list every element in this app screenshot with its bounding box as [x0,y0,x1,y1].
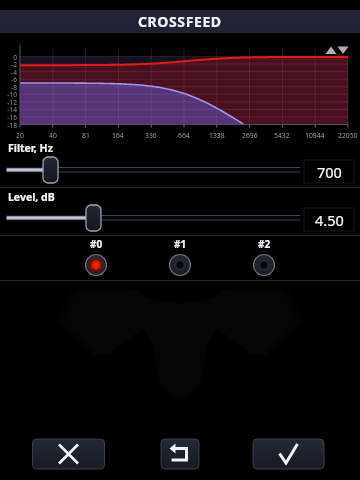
staticText: -18 [7,121,17,130]
staticText: 700 [317,162,342,182]
button[interactable]: Filter value 700 [304,160,354,183]
staticText: 4.50 [315,210,344,230]
staticText: Level, dB [8,190,55,204]
staticText: -14 [7,105,17,114]
button[interactable]: Preset #0 [72,236,120,278]
staticText: CROSSFEED [138,12,222,31]
staticText: 10944 [305,131,325,140]
staticText: 164 [112,131,124,140]
staticText: 0 [13,53,17,62]
staticText: 5432 [274,131,290,140]
staticText: 22050 [338,131,358,140]
staticText: -12 [7,98,17,107]
staticText: 2696 [242,131,258,140]
staticText: -4 [11,68,17,77]
staticText: Filter, Hz [8,141,53,155]
staticText: -8 [11,83,17,92]
button[interactable]: Filter frequency slider [0,157,301,186]
button[interactable]: Accept [253,439,324,469]
button[interactable]: Level value 4.50 [304,208,354,231]
button[interactable]: Revert [161,439,199,469]
button[interactable]: Preset #2 [240,236,288,278]
staticText: -10 [7,90,17,99]
staticText: -2 [11,60,17,69]
staticText: -6 [11,75,17,84]
staticText: 330 [145,131,157,140]
staticText: 40 [49,131,57,140]
staticText: -16 [7,113,17,122]
staticText: #1 [174,237,187,251]
staticText: 81 [82,131,90,140]
button[interactable]: Level slider [0,205,301,234]
button[interactable]: Increase [322,42,336,58]
staticText: 664 [178,131,190,140]
button[interactable]: Decrease [336,42,352,58]
button[interactable]: Frequency response graph [0,40,360,136]
button[interactable]: Cancel [32,439,105,469]
staticText: #0 [90,237,103,251]
staticText: 20 [16,131,24,140]
button[interactable]: Preset #1 [156,236,204,278]
staticText: 1338 [209,131,225,140]
staticText: #2 [258,237,271,251]
